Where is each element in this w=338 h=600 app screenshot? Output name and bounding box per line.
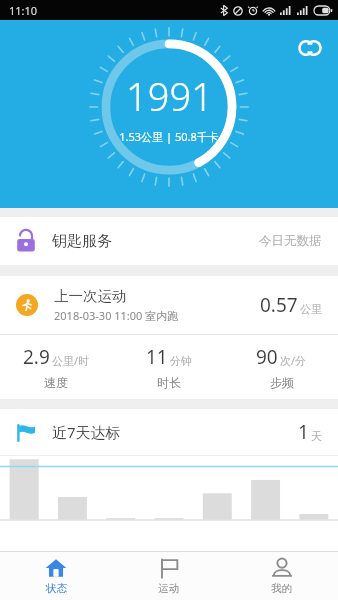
button[interactable]: 近7天达标 — [0, 409, 338, 455]
staticText: 状态 — [46, 582, 67, 595]
staticText: 90 — [256, 344, 278, 370]
staticText: 步频 — [270, 375, 294, 390]
staticText: 2018-03-30 11:00 室内跑 — [54, 308, 179, 323]
staticText: 11:10 — [9, 3, 38, 18]
button[interactable]: 90 — [225, 344, 338, 390]
staticText: 今日无数据 — [259, 233, 322, 249]
button[interactable]: 我的 — [225, 552, 338, 600]
staticText: 分钟 — [170, 354, 192, 368]
button[interactable]: 运动 — [112, 552, 225, 600]
staticText: 近7天达标 — [52, 422, 121, 442]
staticText: 上一次运动 — [54, 287, 127, 305]
button[interactable]: 2.9 — [0, 344, 112, 390]
staticText: 11 — [146, 344, 168, 370]
staticText: 运动 — [158, 582, 179, 595]
staticText: 1 — [298, 419, 309, 445]
staticText: 2.9 — [23, 344, 50, 370]
button[interactable]: 上一次运动 — [0, 276, 338, 334]
button[interactable]: 钥匙服务 — [0, 217, 338, 265]
staticText: 时长 — [157, 375, 181, 390]
staticText: 速度 — [44, 375, 68, 390]
staticText: 我的 — [271, 582, 292, 595]
staticText: 0.57 — [260, 292, 298, 318]
staticText: 钥匙服务 — [52, 232, 112, 251]
staticText: 天 — [311, 429, 322, 443]
staticText: 公里/时 — [52, 353, 90, 368]
button[interactable]: 11 — [112, 344, 225, 390]
button[interactable]: 状态 — [0, 552, 112, 600]
staticText: 公里 — [300, 302, 322, 316]
button[interactable]: Link device — [292, 30, 328, 66]
staticText: 次/分 — [280, 353, 307, 368]
staticText: 1.53公里 | 50.8千卡 — [119, 129, 219, 144]
staticText: 1991 — [126, 70, 213, 122]
